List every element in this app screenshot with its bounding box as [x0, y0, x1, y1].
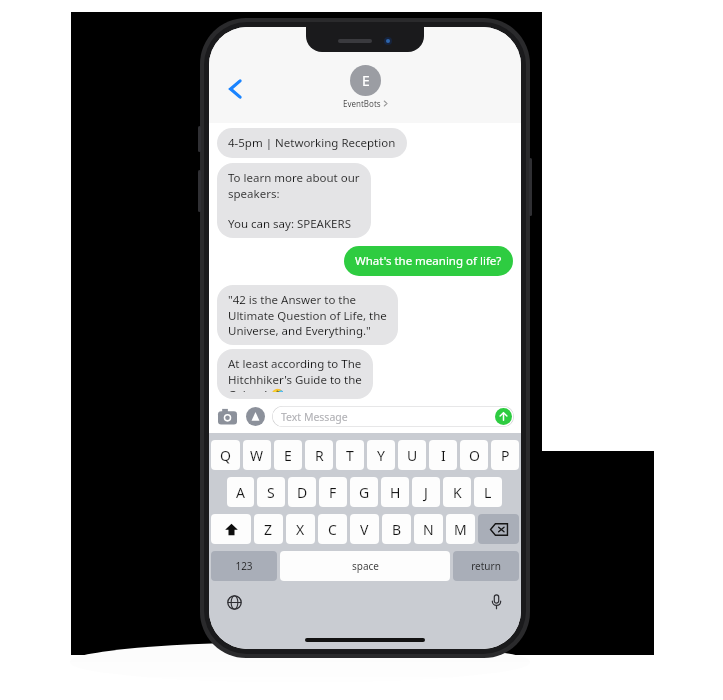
- staticText: R: [315, 446, 324, 465]
- button[interactable]: What's the meaning of life?: [344, 246, 513, 276]
- staticText: Y: [377, 446, 385, 465]
- button[interactable]: R: [305, 440, 333, 470]
- button[interactable]: Q: [211, 440, 240, 470]
- button[interactable]: Shift: [211, 514, 251, 544]
- staticText: K: [453, 483, 462, 502]
- staticText: Q: [220, 446, 231, 465]
- staticText: I: [441, 446, 446, 465]
- staticText: E: [284, 446, 292, 465]
- button[interactable]: Apps: [244, 405, 266, 427]
- button[interactable]: L: [474, 477, 502, 507]
- button[interactable]: H: [381, 477, 409, 507]
- staticText: Z: [264, 520, 273, 539]
- button[interactable]: I: [429, 440, 457, 470]
- button[interactable]: N: [414, 514, 443, 544]
- staticText: F: [329, 483, 337, 502]
- button[interactable]: J: [412, 477, 440, 507]
- button[interactable]: C: [318, 514, 347, 544]
- button[interactable]: K: [443, 477, 471, 507]
- staticText: X: [296, 520, 305, 539]
- staticText: J: [424, 483, 428, 502]
- button[interactable]: M: [446, 514, 475, 544]
- button[interactable]: Change keyboard: [224, 592, 244, 612]
- staticText: M: [454, 520, 467, 539]
- button[interactable]: Text Message: [272, 406, 514, 427]
- button[interactable]: Y: [367, 440, 395, 470]
- button[interactable]: 4-5pm | Networking Reception: [217, 128, 407, 158]
- button[interactable]: return: [453, 551, 519, 581]
- button[interactable]: Backspace: [478, 514, 519, 544]
- staticText: D: [297, 483, 308, 502]
- staticText: L: [484, 483, 492, 502]
- button[interactable]: 123: [211, 551, 277, 581]
- button[interactable]: D: [288, 477, 316, 507]
- staticText: EventBots: [343, 98, 381, 109]
- staticText: 4-5pm | Networking Reception: [228, 135, 396, 151]
- button[interactable]: Back: [219, 72, 253, 106]
- button[interactable]: W: [243, 440, 271, 470]
- button[interactable]: Dictate: [486, 592, 506, 612]
- staticText: W: [250, 446, 264, 465]
- button[interactable]: space: [280, 551, 450, 581]
- button[interactable]: Camera: [216, 405, 238, 427]
- button[interactable]: B: [382, 514, 411, 544]
- staticText: S: [267, 483, 275, 502]
- button[interactable]: Z: [254, 514, 283, 544]
- button[interactable]: P: [491, 440, 519, 470]
- staticText: U: [407, 446, 418, 465]
- staticText: A: [236, 483, 245, 502]
- staticText: G: [359, 483, 370, 502]
- staticText: T: [346, 446, 354, 465]
- button[interactable]: Send: [495, 408, 512, 425]
- button[interactable]: F: [319, 477, 347, 507]
- staticText: To learn more about our speakers: You ca…: [228, 170, 360, 231]
- button[interactable]: S: [257, 477, 285, 507]
- button[interactable]: G: [350, 477, 378, 507]
- button[interactable]: T: [336, 440, 364, 470]
- staticText: C: [328, 520, 337, 539]
- button[interactable]: X: [286, 514, 315, 544]
- staticText: B: [392, 520, 402, 539]
- staticText: P: [501, 446, 510, 465]
- button[interactable]: O: [460, 440, 488, 470]
- staticText: Text Message: [281, 410, 348, 424]
- button[interactable]: V: [350, 514, 379, 544]
- button[interactable]: E: [274, 440, 302, 470]
- staticText: What's the meaning of life?: [355, 253, 502, 269]
- button[interactable]: At least according to The Hitchhiker's G…: [217, 349, 373, 399]
- staticText: E: [362, 71, 370, 90]
- staticText: H: [390, 483, 401, 502]
- staticText: 123: [235, 559, 253, 573]
- button[interactable]: E: [343, 65, 388, 109]
- staticText: At least according to The Hitchhiker's G…: [228, 356, 362, 392]
- staticText: return: [471, 559, 501, 573]
- staticText: "42 is the Answer to the Ultimate Questi…: [228, 292, 387, 338]
- staticText: O: [469, 446, 480, 465]
- button[interactable]: U: [398, 440, 426, 470]
- button[interactable]: A: [227, 477, 254, 507]
- button[interactable]: "42 is the Answer to the Ultimate Questi…: [217, 285, 398, 345]
- staticText: space: [352, 559, 379, 573]
- button[interactable]: To learn more about our speakers: You ca…: [217, 163, 371, 238]
- staticText: V: [360, 520, 369, 539]
- staticText: N: [423, 520, 434, 539]
